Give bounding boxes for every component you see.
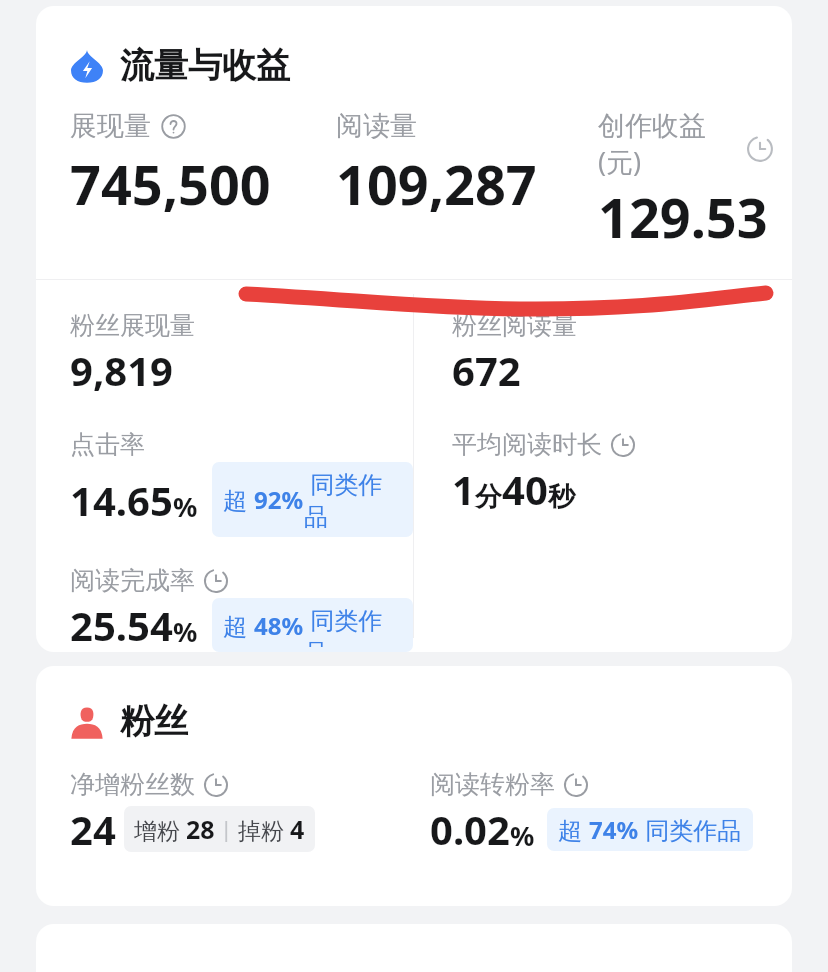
staticText: 129.53 — [598, 180, 768, 254]
staticText: (元) — [598, 143, 642, 180]
staticText: 745,500 — [70, 147, 271, 221]
staticText: 展现量 — [70, 109, 151, 143]
staticText: % — [510, 817, 535, 854]
staticText: 74% — [589, 813, 639, 846]
staticText: 点击率 — [70, 429, 145, 460]
staticText: 阅读完成率 — [70, 565, 195, 596]
staticText: 平均阅读时长 — [452, 429, 602, 460]
staticText: 超 — [558, 813, 589, 846]
staticText: 流量与收益 — [120, 44, 290, 87]
button[interactable]: 粉丝阅读量 — [452, 310, 577, 397]
staticText: 超 — [223, 483, 254, 516]
button[interactable]: 平均阅读时长 — [452, 429, 636, 516]
staticText: 阅读量 — [336, 109, 417, 143]
staticText: 粉丝阅读量 — [452, 310, 577, 341]
staticText: 40 — [502, 462, 548, 516]
button[interactable]: 超 — [547, 808, 753, 851]
button[interactable]: 流量与收益 — [36, 6, 792, 93]
staticText: % — [173, 613, 198, 650]
staticText: 同类作品 — [639, 813, 742, 846]
button[interactable]: 阅读量 — [336, 109, 586, 221]
staticText: 14.65 — [70, 473, 173, 527]
button[interactable]: 展现量 — [70, 109, 330, 221]
staticText: 粉丝 — [120, 700, 188, 743]
button[interactable]: 阅读完成率 — [70, 565, 413, 652]
staticText: 48% — [254, 609, 304, 642]
button[interactable]: 点击率 — [70, 429, 413, 537]
staticText: 阅读转粉率 — [430, 769, 555, 800]
staticText: 0.02 — [430, 802, 510, 856]
staticText: 24 — [70, 802, 116, 856]
staticText: 672 — [452, 343, 521, 397]
staticText: 25.54 — [70, 598, 173, 652]
staticText: | — [215, 815, 238, 844]
staticText: 4 — [290, 812, 305, 846]
button[interactable]: 阅读转粉率 — [430, 769, 792, 856]
button[interactable]: 创作收益 — [598, 109, 768, 254]
staticText: 秒 — [548, 480, 575, 514]
staticText: % — [173, 488, 198, 525]
staticText: 分 — [475, 480, 502, 514]
button[interactable]: 净增粉丝数 — [70, 769, 414, 856]
staticText: 同类作品 — [304, 603, 402, 647]
staticText: 粉丝展现量 — [70, 310, 195, 341]
staticText: 1 — [452, 462, 475, 516]
staticText: 增粉 — [134, 814, 186, 845]
button[interactable]: Data delay info — [746, 135, 774, 163]
staticText: 28 — [186, 812, 215, 846]
button[interactable]: 超 — [212, 598, 413, 652]
button[interactable]: 粉丝展现量 — [70, 310, 195, 397]
staticText: 创作收益 — [598, 109, 706, 143]
staticText: 同类作品 — [304, 467, 402, 532]
staticText: 9,819 — [70, 343, 173, 397]
staticText: 超 — [223, 609, 254, 642]
staticText: 109,287 — [336, 147, 537, 221]
staticText: 92% — [254, 483, 304, 516]
staticText: 掉粉 — [238, 814, 290, 845]
button[interactable]: 粉丝 — [36, 666, 792, 743]
button[interactable]: 超 — [212, 462, 413, 537]
staticText: 净增粉丝数 — [70, 769, 195, 800]
